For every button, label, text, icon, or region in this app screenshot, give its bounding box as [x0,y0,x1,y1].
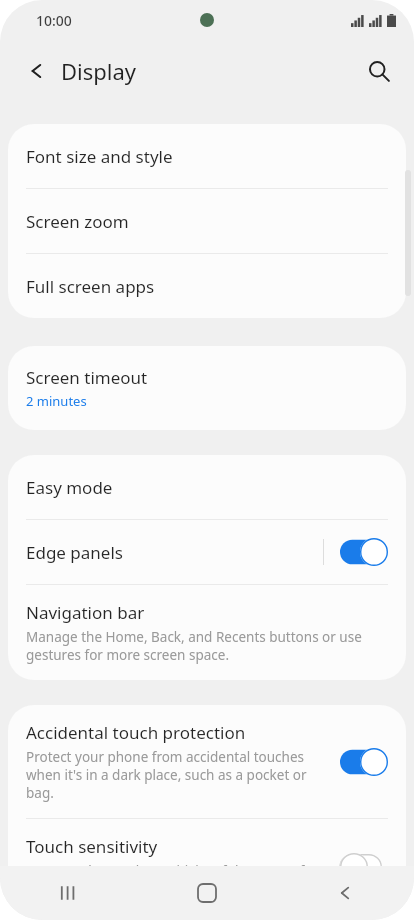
button[interactable]: Recents [0,866,138,920]
staticText: Edge panels [26,541,323,564]
staticText: Display [61,56,137,86]
button[interactable]: Navigation bar [8,585,406,680]
staticText: Manage the Home, Back, and Recents butto… [26,628,388,664]
button[interactable]: Font size and style [8,124,406,188]
button[interactable]: Touch sensitivity [8,819,406,914]
button[interactable]: On [340,538,388,566]
staticText: Protect your phone from accidental touch… [26,748,328,802]
staticText: 2 minutes [26,392,87,410]
button[interactable]: On [340,748,388,776]
staticText: 10:00 [36,11,72,30]
button[interactable]: Accidental touch protection [8,705,406,818]
button[interactable]: Back [14,48,60,94]
button[interactable]: Screen zoom [8,189,406,253]
button[interactable]: Easy mode [8,455,406,519]
button[interactable]: Search [356,48,402,94]
button[interactable]: Edge panels [8,520,406,584]
staticText: Screen timeout [26,366,148,389]
button[interactable]: Home [138,866,276,920]
staticText: Font size and style [26,145,173,168]
staticText: Screen zoom [26,210,129,233]
staticText: Touch sensitivity [26,835,158,858]
button[interactable]: Back [276,866,414,920]
staticText: Increase the touch sensitivity of the sc… [26,862,328,898]
button[interactable]: Full screen apps [8,254,406,318]
staticText: Easy mode [26,476,113,499]
button[interactable]: Off [340,853,388,881]
button[interactable]: Screen timeout [8,346,406,430]
staticText: Accidental touch protection [26,721,246,744]
staticText: Full screen apps [26,275,155,298]
staticText: Navigation bar [26,601,145,624]
